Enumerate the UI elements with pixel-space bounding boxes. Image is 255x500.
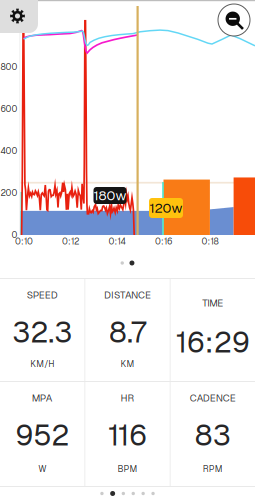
staticText: MPA — [32, 392, 53, 404]
staticText: CADENCE — [190, 392, 236, 404]
staticText: 200 — [0, 187, 17, 199]
button[interactable]: Settings — [0, 0, 38, 33]
staticText: 0:16 — [155, 236, 172, 247]
button[interactable]: Zoom out — [217, 3, 251, 37]
button[interactable]: TIME — [171, 279, 255, 381]
staticText: 0:18 — [201, 236, 218, 247]
staticText: 0:14 — [108, 236, 125, 247]
staticText: RPM — [203, 463, 223, 475]
staticText: 120w — [149, 199, 182, 217]
staticText: 0 — [11, 229, 17, 241]
staticText: KM — [120, 358, 134, 370]
staticText: 800 — [0, 61, 17, 73]
staticText: 16:29 — [176, 323, 250, 361]
button[interactable]: HR — [85, 382, 170, 486]
staticText: KM/H — [30, 358, 54, 370]
button[interactable]: CADENCE — [171, 382, 255, 486]
staticText: 83 — [195, 416, 231, 454]
staticText: W — [38, 463, 46, 475]
staticText: 8.7 — [109, 313, 146, 351]
staticText: SPEED — [27, 289, 58, 301]
staticText: HR — [120, 392, 134, 404]
button[interactable]: MPA — [0, 382, 84, 486]
staticText: 400 — [0, 145, 17, 157]
staticText: 952 — [15, 416, 69, 454]
staticText: 32.3 — [12, 313, 72, 351]
staticText: 180w — [93, 187, 126, 204]
staticText: DISTANCE — [104, 289, 151, 301]
staticText: 0:12 — [62, 236, 79, 247]
staticText: 116 — [108, 416, 147, 454]
staticText: 600 — [0, 103, 17, 115]
staticText: TIME — [202, 297, 223, 309]
button[interactable]: DISTANCE — [85, 279, 170, 381]
staticText: BPM — [117, 463, 137, 475]
staticText: 0:10 — [15, 236, 33, 247]
button[interactable]: SPEED — [0, 279, 84, 381]
